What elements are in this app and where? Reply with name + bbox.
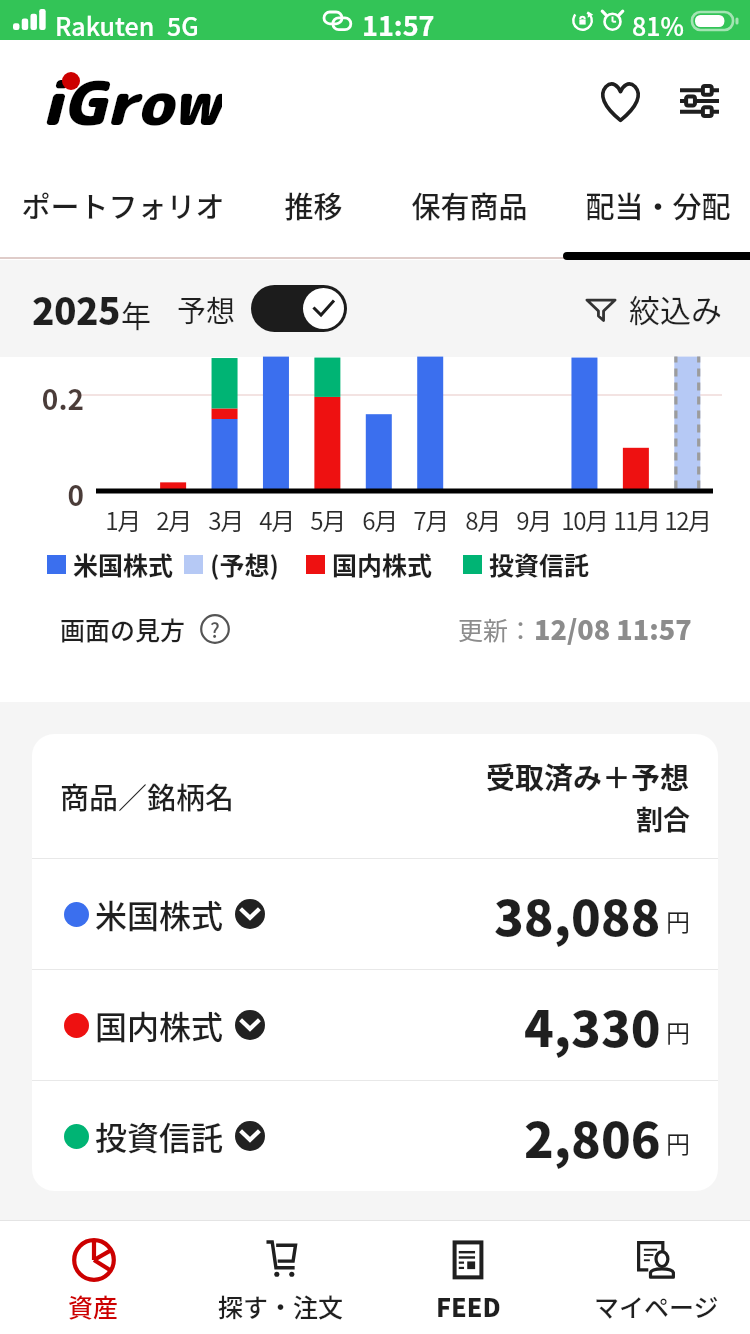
staticText: 0 [67, 474, 84, 515]
staticText: 0.2 [41, 378, 84, 419]
staticText: 米国株式 [95, 891, 224, 937]
staticText: 国内株式 [332, 546, 433, 582]
staticText: 2月 [156, 502, 191, 537]
staticText: FEED [436, 1288, 501, 1324]
staticText: 年 [121, 292, 151, 335]
staticText: 割合 [636, 799, 690, 838]
staticText: 円 [666, 1014, 690, 1049]
button[interactable]: 保有商品 [354, 160, 584, 260]
staticText: iGrow [41, 60, 222, 136]
staticText: 推移 [284, 184, 343, 226]
staticText: 5月 [310, 502, 345, 537]
staticText: 8月 [465, 502, 500, 537]
button[interactable]: ポートフォリオ [8, 160, 238, 260]
button[interactable]: お気に入り [585, 73, 655, 129]
staticText: 12月 [664, 502, 711, 537]
staticText: 国内株式 [95, 1002, 224, 1048]
staticText: 5G [167, 7, 199, 43]
button[interactable]: 絞込み [585, 286, 722, 331]
staticText: ? [210, 615, 220, 644]
staticText: 受取済み＋予想 [486, 755, 690, 797]
staticText: 資産 [68, 1288, 119, 1324]
button[interactable]: 資産 [0, 1221, 187, 1334]
staticText: 10月 [561, 502, 608, 537]
staticText: 絞込み [629, 286, 722, 331]
button[interactable]: マイページ [562, 1221, 750, 1334]
staticText: 商品／銘柄名 [60, 775, 235, 817]
button[interactable]: 配当・分配 [543, 160, 750, 260]
staticText: 探す・注文 [218, 1288, 344, 1324]
staticText: 投資信託 [95, 1113, 224, 1159]
staticText: 38,088 [494, 879, 661, 950]
staticText: 画面の見方 [60, 611, 186, 647]
button[interactable]: 予想を表示 [251, 285, 347, 332]
button[interactable]: 国内株式 [32, 970, 718, 1080]
staticText: 9月 [516, 502, 551, 537]
staticText: 3月 [208, 502, 243, 537]
button[interactable]: 米国株式 [32, 859, 718, 969]
button[interactable]: 探す・注文 [187, 1221, 374, 1334]
button[interactable]: FEED [374, 1221, 562, 1334]
staticText: 更新： [458, 611, 534, 647]
staticText: 投資信託 [489, 546, 590, 582]
staticText: 予想 [177, 288, 236, 330]
staticText: マイページ [594, 1288, 719, 1324]
staticText: 配当・分配 [585, 184, 731, 226]
staticText: 円 [666, 1125, 690, 1160]
staticText: 4,330 [524, 990, 661, 1061]
button[interactable]: 設定 [664, 73, 734, 129]
button[interactable]: 画面の見方 [60, 611, 230, 647]
staticText: Rakuten [55, 7, 155, 43]
staticText: 2025 [32, 282, 121, 336]
staticText: 1月 [105, 502, 140, 537]
staticText: 6月 [362, 502, 397, 537]
staticText: 2,806 [524, 1101, 661, 1172]
staticText: 円 [666, 903, 690, 938]
staticText: 81% [632, 7, 684, 43]
staticText: 保有商品 [411, 184, 528, 226]
staticText: 4月 [259, 502, 294, 537]
staticText: 12/08 11:57 [534, 609, 692, 648]
button[interactable]: 投資信託 [32, 1081, 718, 1191]
staticText: 11:57 [362, 5, 435, 44]
staticText: (予想) [210, 546, 279, 582]
staticText: ポートフォリオ [21, 184, 225, 226]
button[interactable]: 推移 [198, 160, 428, 260]
staticText: 11月 [613, 502, 660, 537]
staticText: 米国株式 [73, 546, 174, 582]
staticText: 7月 [413, 502, 448, 537]
